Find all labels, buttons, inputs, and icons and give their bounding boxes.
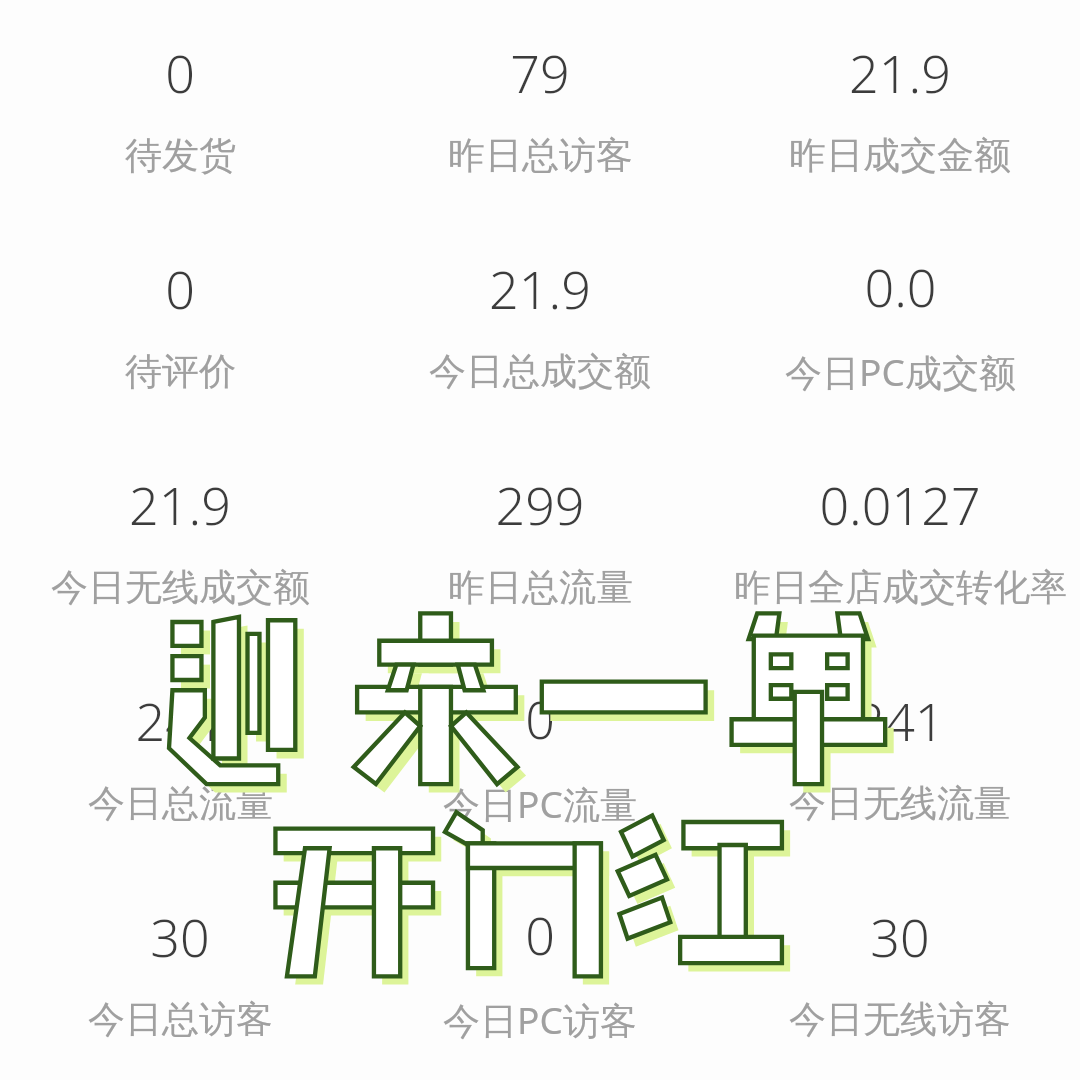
- staticText: 299: [495, 469, 585, 540]
- staticText: 241: [135, 685, 225, 756]
- staticText: 今日总成交额: [429, 348, 651, 395]
- staticText: 今日总流量: [88, 780, 273, 827]
- button[interactable]: 0: [360, 864, 720, 1080]
- staticText: 昨日总流量: [448, 564, 633, 611]
- staticText: 21.9: [129, 469, 231, 540]
- staticText: 30: [870, 901, 930, 972]
- staticText: 今日PC访客: [443, 994, 637, 1045]
- staticText: 0: [525, 683, 555, 754]
- staticText: 21.9: [849, 37, 951, 108]
- other: 迎来一单 开门红 promotional overlay: [0, 0, 1080, 1080]
- staticText: 今日无线流量: [789, 780, 1011, 827]
- staticText: 今日PC流量: [443, 778, 637, 829]
- staticText: 0.0: [864, 251, 937, 322]
- staticText: 0.0127: [819, 469, 981, 540]
- staticText: 昨日总访客: [448, 132, 633, 179]
- staticText: 今日无线成交额: [51, 564, 310, 611]
- button[interactable]: 241: [0, 648, 360, 864]
- staticText: 昨日全店成交转化率: [734, 564, 1067, 611]
- staticText: 79: [510, 37, 570, 108]
- button[interactable]: 0.0: [720, 216, 1080, 432]
- staticText: 待评价: [125, 348, 236, 395]
- staticText: 今日无线访客: [789, 996, 1011, 1043]
- button[interactable]: 30: [0, 864, 360, 1080]
- staticText: 241: [855, 685, 945, 756]
- button[interactable]: 0: [360, 648, 720, 864]
- button[interactable]: 0: [0, 216, 360, 432]
- staticText: 待发货: [125, 132, 236, 179]
- button[interactable]: 241: [720, 648, 1080, 864]
- button[interactable]: 79: [360, 0, 720, 216]
- staticText: 昨日成交金额: [789, 132, 1011, 179]
- staticText: 0: [165, 37, 195, 108]
- button[interactable]: 21.9: [720, 0, 1080, 216]
- button[interactable]: 0: [0, 0, 360, 216]
- button[interactable]: 30: [720, 864, 1080, 1080]
- staticText: 今日PC成交额: [785, 346, 1016, 397]
- button[interactable]: 21.9: [360, 216, 720, 432]
- staticText: 0: [165, 253, 195, 324]
- staticText: 30: [150, 901, 210, 972]
- staticText: 21.9: [489, 253, 591, 324]
- staticText: 0: [525, 899, 555, 970]
- button[interactable]: 0.0127: [720, 432, 1080, 648]
- button[interactable]: 21.9: [0, 432, 360, 648]
- button[interactable]: 299: [360, 432, 720, 648]
- staticText: 今日总访客: [88, 996, 273, 1043]
